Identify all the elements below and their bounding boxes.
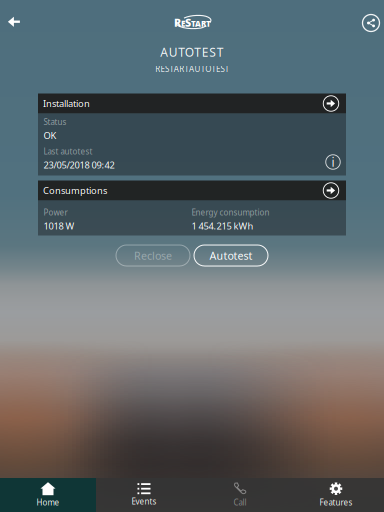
staticText: 1 454.215 kWh bbox=[191, 220, 253, 232]
button[interactable]: Reclose bbox=[116, 245, 190, 266]
staticText: Energy consumption bbox=[191, 207, 269, 218]
button[interactable]: Installation bbox=[38, 93, 346, 113]
staticText: Installation bbox=[43, 97, 90, 110]
button[interactable]: Autotest bbox=[194, 245, 268, 266]
button[interactable]: Consumptions bbox=[38, 180, 346, 200]
staticText: Autotest bbox=[209, 248, 252, 263]
button[interactable]: Home bbox=[0, 478, 96, 512]
staticText: RESTART bbox=[174, 16, 211, 30]
staticText: Events bbox=[131, 496, 156, 507]
staticText: i bbox=[331, 154, 334, 170]
button[interactable]: Features bbox=[288, 478, 384, 512]
staticText: Reclose bbox=[134, 248, 172, 263]
button[interactable]: Call bbox=[192, 478, 288, 512]
staticText: RESTARTAUTOTEST bbox=[155, 64, 229, 74]
staticText: Status bbox=[43, 116, 66, 127]
button[interactable]: Events bbox=[96, 478, 192, 512]
staticText: 23/05/2018 09:42 bbox=[43, 159, 114, 171]
button[interactable]: Share bbox=[356, 8, 384, 38]
button[interactable]: Back bbox=[0, 5, 31, 39]
staticText: Power bbox=[43, 207, 67, 218]
staticText: Call bbox=[233, 497, 246, 508]
staticText: Last autotest bbox=[43, 146, 92, 157]
staticText: Home bbox=[36, 497, 59, 508]
staticText: OK bbox=[43, 129, 56, 141]
staticText: Consumptions bbox=[43, 184, 107, 197]
button[interactable]: Information bbox=[324, 153, 342, 171]
staticText: 1018 W bbox=[43, 220, 74, 232]
staticText: AUTOTEST bbox=[160, 44, 224, 60]
staticText: Features bbox=[319, 497, 352, 508]
